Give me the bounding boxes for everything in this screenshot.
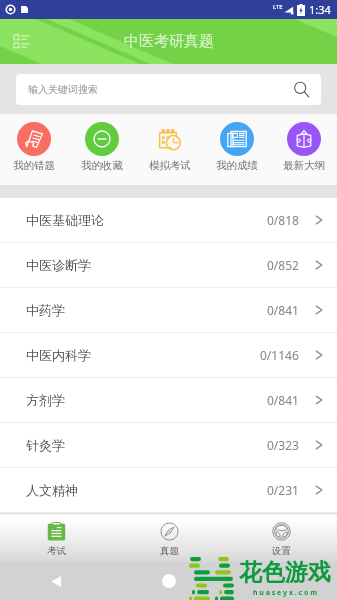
button[interactable]: 设置 <box>225 515 337 564</box>
staticText: 0/852 <box>267 257 299 273</box>
staticText: 0/841 <box>267 302 299 318</box>
staticText: 中医考研真题 <box>124 32 214 51</box>
staticText: 中医内科学 <box>26 347 91 363</box>
staticText: 我的错题 <box>13 159 55 172</box>
button[interactable]: 考试 <box>0 515 113 564</box>
staticText: 人文精神 <box>26 482 78 498</box>
staticText: 最新大纲 <box>283 159 325 172</box>
staticText: 真题 <box>160 545 179 557</box>
staticText: 模拟考试 <box>149 159 191 172</box>
button[interactable]: 真题 <box>113 515 225 564</box>
button[interactable]: 人文精神 <box>0 468 337 513</box>
staticText: 0/818 <box>267 212 299 228</box>
staticText: 我的收藏 <box>81 159 123 172</box>
staticText: LTE <box>273 3 283 11</box>
button[interactable]: 方剂学 <box>0 378 337 423</box>
staticText: 输入关键词搜索 <box>28 83 98 96</box>
button[interactable]: 针灸学 <box>0 423 337 468</box>
button[interactable]: 中医内科学 <box>0 333 337 378</box>
staticText: 中医基础理论 <box>26 212 104 228</box>
staticText: h u a s e y x . c o m <box>253 588 318 598</box>
button[interactable]: 输入关键词搜索 <box>16 74 321 105</box>
staticText: 设置 <box>272 545 291 557</box>
staticText: 1:34 <box>309 2 331 17</box>
button[interactable]: 中医诊断学 <box>0 243 337 288</box>
button[interactable]: 我的收藏 <box>68 114 136 185</box>
staticText: 0/841 <box>267 392 299 408</box>
staticText: 0/231 <box>267 482 299 498</box>
staticText: 中医诊断学 <box>26 257 91 273</box>
button[interactable]: 我的成绩 <box>203 114 270 185</box>
staticText: 针灸学 <box>26 437 65 453</box>
button[interactable]: 中医基础理论 <box>0 198 337 243</box>
staticText: 中药学 <box>26 302 65 318</box>
staticText: 0/1146 <box>260 347 299 363</box>
button[interactable]: 模拟考试 <box>136 114 203 185</box>
staticText: 花色游戏 <box>239 558 331 587</box>
staticText: 我的成绩 <box>216 159 258 172</box>
staticText: 方剂学 <box>26 392 65 408</box>
other: Search <box>293 81 311 99</box>
button[interactable]: 中药学 <box>0 288 337 333</box>
staticText: 0/323 <box>267 437 299 453</box>
button[interactable]: 最新大纲 <box>270 114 337 185</box>
staticText: 考试 <box>47 545 66 557</box>
button[interactable]: Menu <box>8 28 36 56</box>
button[interactable]: Home <box>113 562 225 600</box>
button[interactable]: 我的错题 <box>0 114 68 185</box>
button[interactable]: Back <box>0 562 112 600</box>
